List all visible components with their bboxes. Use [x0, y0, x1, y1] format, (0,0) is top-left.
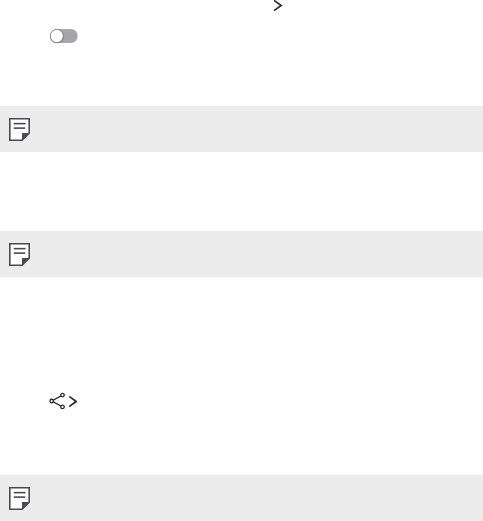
button[interactable]: Note section 2: [0, 231, 483, 277]
button[interactable]: Share: [49, 392, 77, 410]
button[interactable]: Show more: [274, 0, 282, 11]
button[interactable]: Note section 3: [0, 475, 483, 521]
button[interactable]: Toggle setting: [49, 28, 79, 44]
button[interactable]: Note section 1: [0, 106, 483, 152]
